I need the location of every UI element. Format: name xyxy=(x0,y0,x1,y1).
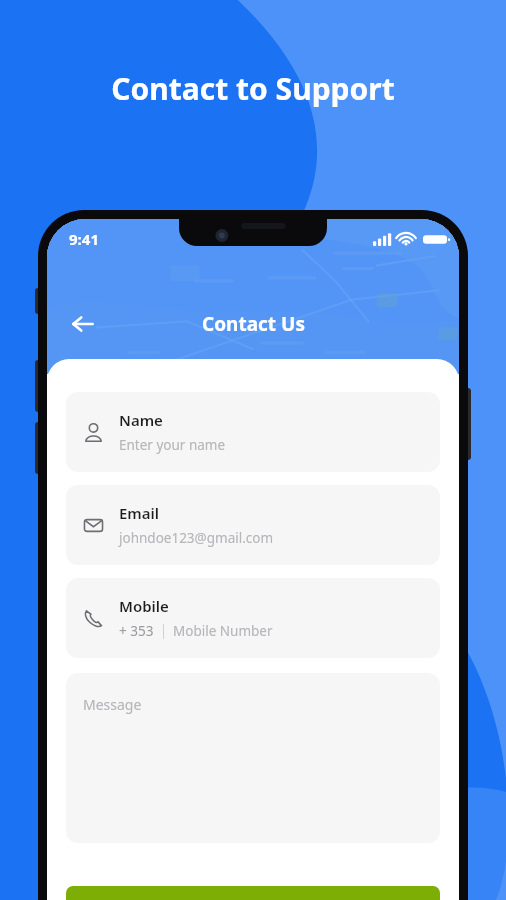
staticText: Contact to Support xyxy=(111,68,395,109)
button[interactable]: Message xyxy=(66,673,440,843)
staticText: Name xyxy=(119,410,163,430)
staticText: Contact Us xyxy=(202,311,305,337)
staticText: Mobile Number xyxy=(173,622,273,640)
staticText: 9:41 xyxy=(69,229,99,249)
button[interactable]: Submit xyxy=(66,886,440,900)
staticText: Mobile xyxy=(119,596,169,616)
staticText: + 353 xyxy=(119,622,154,640)
button[interactable]: Name xyxy=(66,392,440,472)
staticText: Enter your name xyxy=(119,436,226,454)
staticText: Email xyxy=(119,503,160,523)
button[interactable]: Email xyxy=(66,485,440,565)
staticText: Message xyxy=(83,695,142,714)
button[interactable]: Back xyxy=(61,302,105,346)
staticText: johndoe123@gmail.com xyxy=(119,529,274,547)
button[interactable]: Mobile xyxy=(66,578,440,658)
